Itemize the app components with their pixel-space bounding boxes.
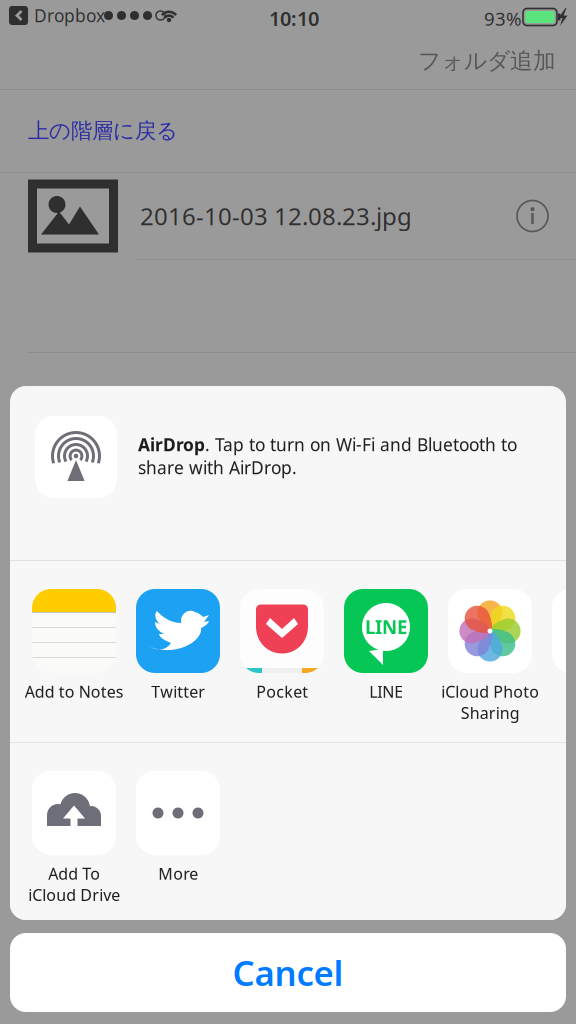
staticText: LINE xyxy=(369,681,403,702)
button[interactable]: フォルダ追加 xyxy=(418,33,576,89)
button[interactable]: 2016-10-03 12.08.23.jpg xyxy=(0,173,576,259)
button[interactable]: Add To iCloud Drive xyxy=(22,743,126,913)
button[interactable]: LINE xyxy=(334,561,438,731)
button[interactable]: Pocket xyxy=(230,561,334,731)
button[interactable]: Add to Notes xyxy=(22,561,126,731)
staticText: iCloud Photo Sharing xyxy=(441,681,539,723)
button[interactable]: More xyxy=(126,743,230,913)
staticText: More xyxy=(158,863,198,884)
button[interactable]: iCloud Photo Sharing xyxy=(438,561,542,731)
staticText: 10:10 xyxy=(269,5,319,32)
button[interactable]: Dropbox xyxy=(8,4,105,27)
staticText: Add to Notes xyxy=(24,681,123,702)
staticText: 93% xyxy=(484,6,522,31)
staticText: LINE xyxy=(365,615,407,639)
button[interactable]: 上の階層に戻る xyxy=(0,90,576,172)
button[interactable]: Cancel xyxy=(10,933,566,1012)
staticText: フォルダ追加 xyxy=(418,47,556,75)
staticText: Cancel xyxy=(232,949,343,995)
staticText: Pocket xyxy=(256,681,308,702)
staticText: 2016-10-03 12.08.23.jpg xyxy=(140,200,412,232)
staticText: 上の階層に戻る xyxy=(28,118,178,144)
staticText: Dropbox xyxy=(34,4,105,27)
button[interactable]: AirDrop. Tap to turn on Wi-Fi and Blueto… xyxy=(10,386,566,560)
staticText: Twitter xyxy=(151,681,205,702)
button[interactable]: Twitter xyxy=(126,561,230,731)
staticText: Add To iCloud Drive xyxy=(28,863,120,905)
button[interactable]: Google xyxy=(542,561,576,731)
staticText: AirDrop. Tap to turn on Wi-Fi and Blueto… xyxy=(138,433,517,479)
